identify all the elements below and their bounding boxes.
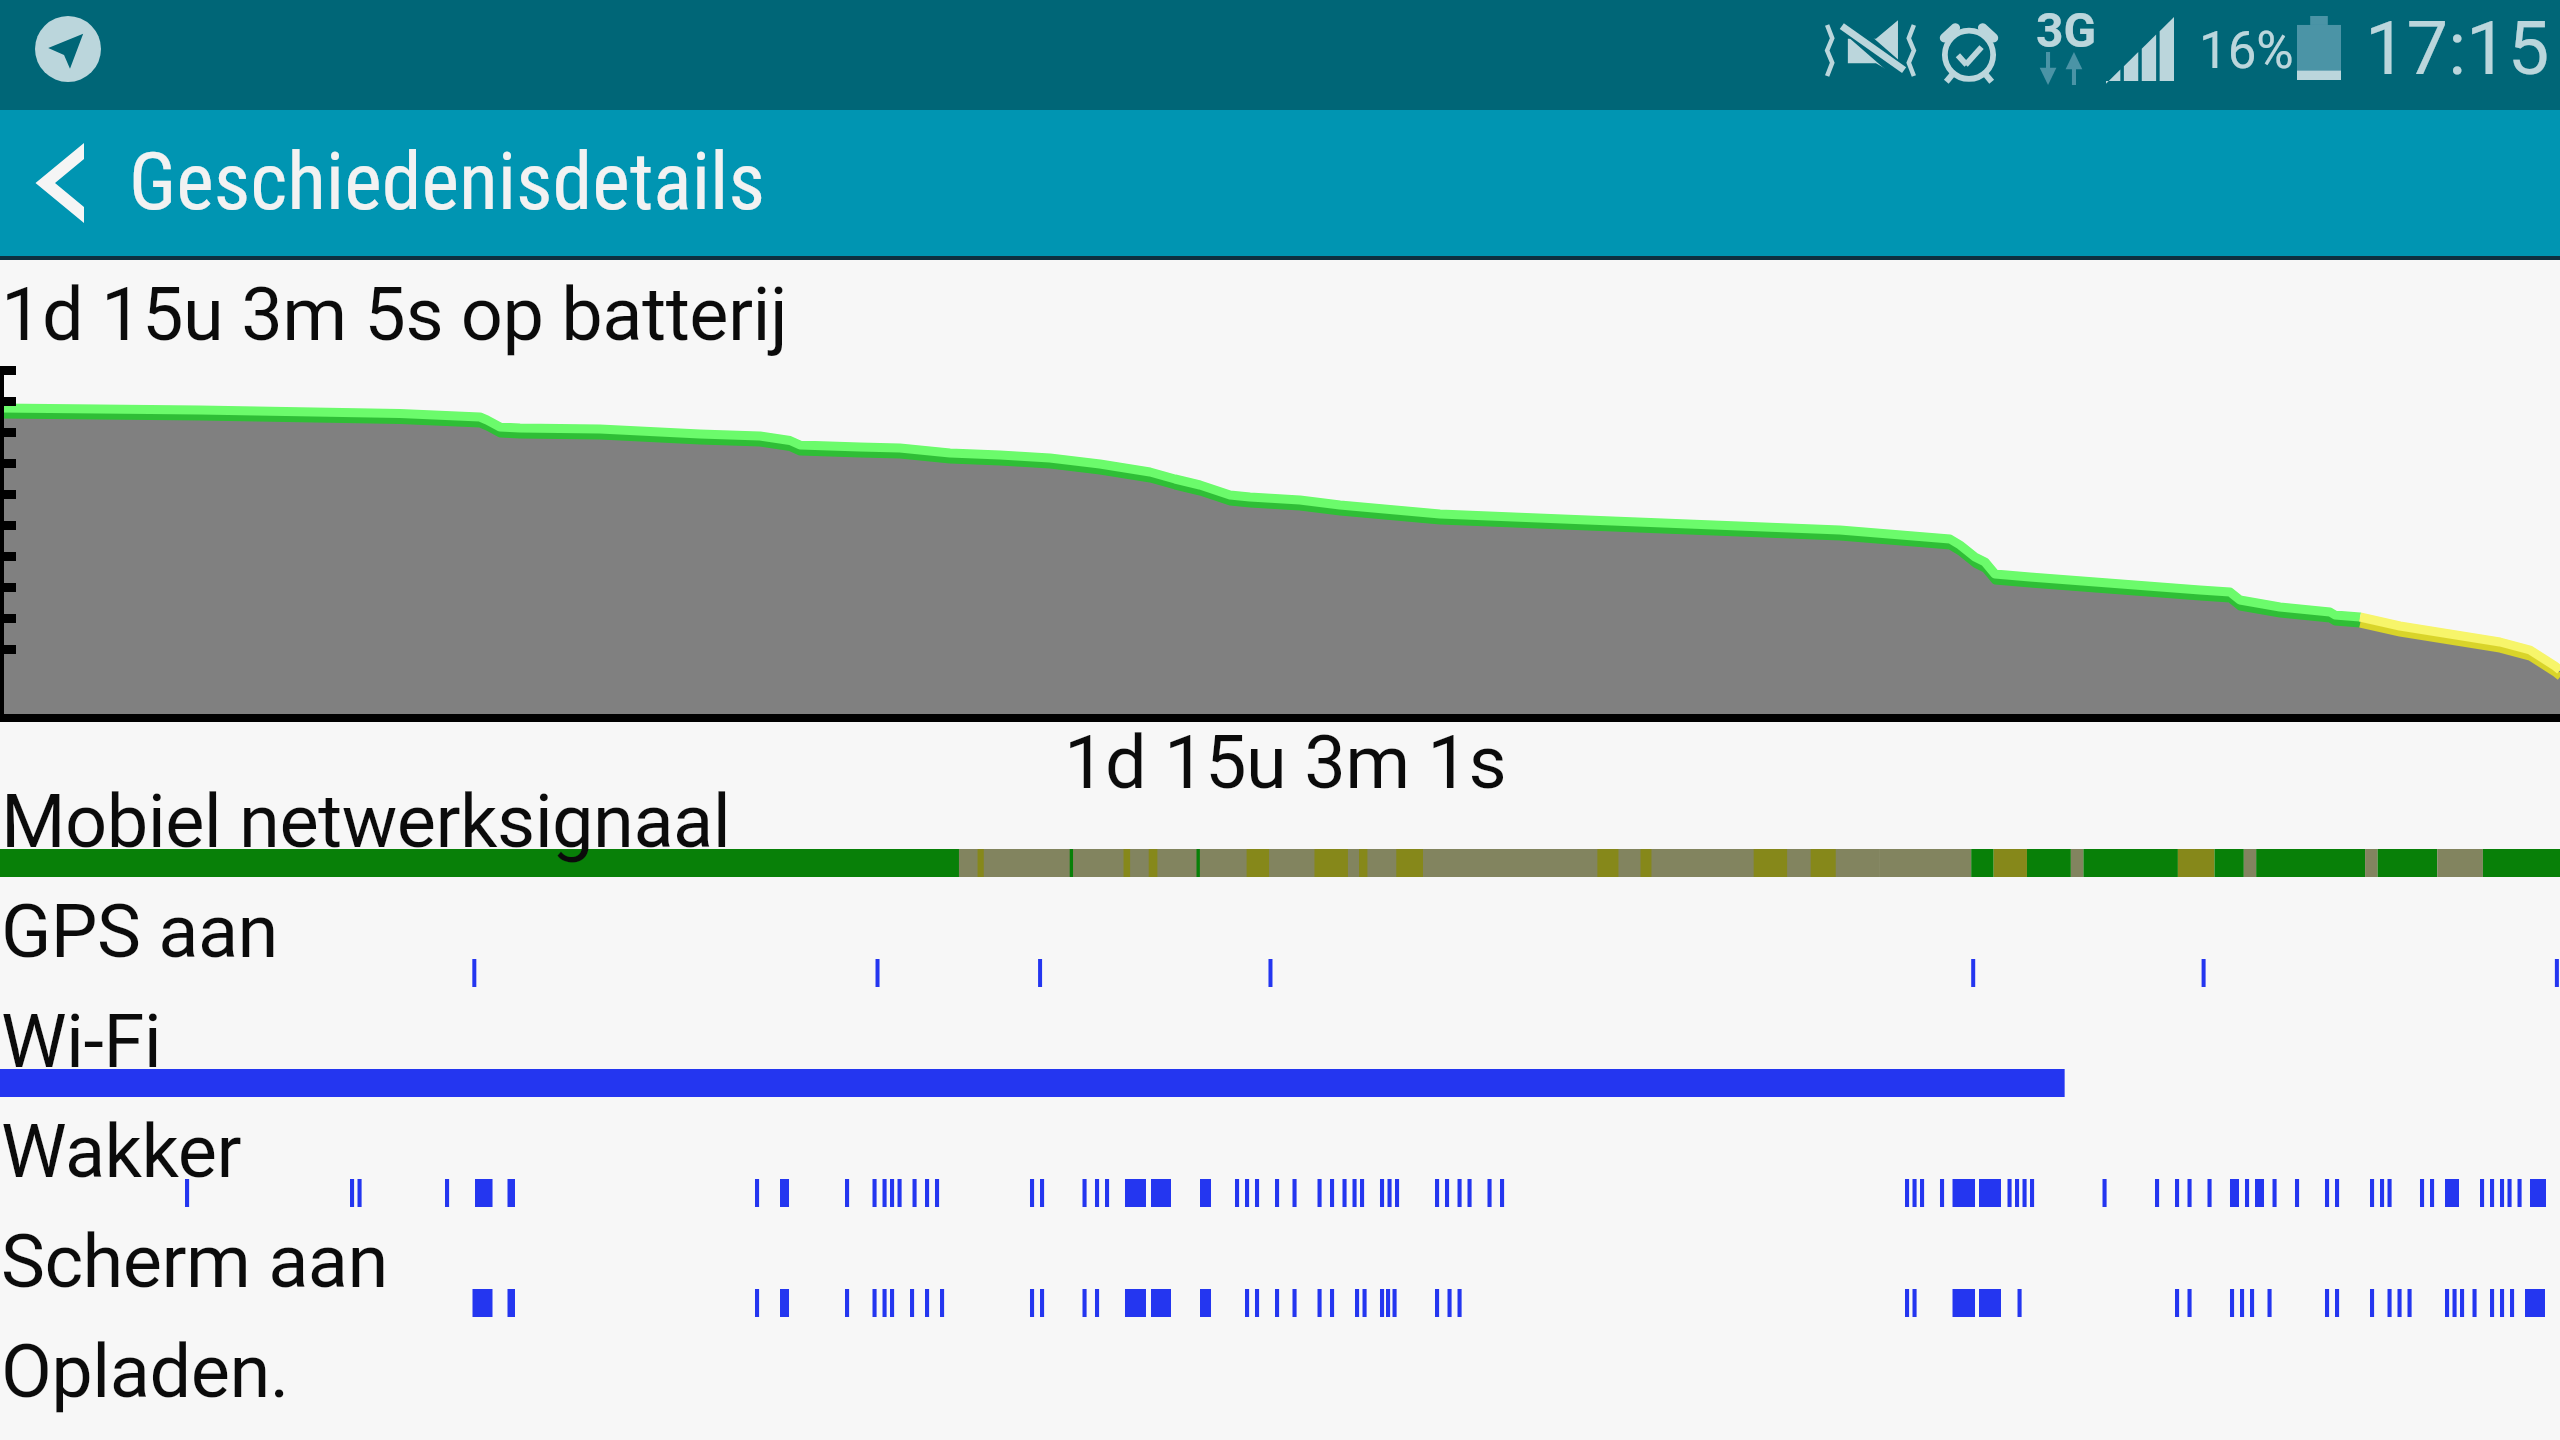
staticText: 16% bbox=[2199, 21, 2294, 81]
staticText: Opladen. bbox=[1, 1328, 289, 1415]
staticText: Mobiel netwerksignaal bbox=[1, 778, 731, 865]
button[interactable]: Mobiel netwerksignaal bbox=[0, 772, 2560, 882]
staticText: 1d 15u 3m 5s op batterij bbox=[1, 271, 788, 358]
button[interactable]: Scherm aan bbox=[0, 1212, 2560, 1322]
staticText: 17:15 bbox=[2365, 5, 2550, 92]
button[interactable]: Wi-Fi bbox=[0, 992, 2560, 1102]
button[interactable]: Location bbox=[35, 16, 101, 82]
staticText: Geschiedenisdetails bbox=[129, 135, 765, 229]
staticText: GPS aan bbox=[1, 888, 278, 975]
button[interactable]: Battery level chart bbox=[0, 366, 2560, 722]
button[interactable]: Back bbox=[34, 143, 84, 223]
button[interactable]: GPS aan bbox=[0, 882, 2560, 992]
staticText: 3G bbox=[2036, 2, 2097, 58]
button[interactable]: Opladen. bbox=[0, 1322, 2560, 1432]
staticText: Scherm aan bbox=[1, 1218, 388, 1305]
button[interactable]: Wakker bbox=[0, 1102, 2560, 1212]
staticText: 1d 15u 3m 1s bbox=[1064, 719, 1507, 806]
staticText: Wi-Fi bbox=[1, 998, 162, 1085]
staticText: Wakker bbox=[1, 1108, 242, 1195]
